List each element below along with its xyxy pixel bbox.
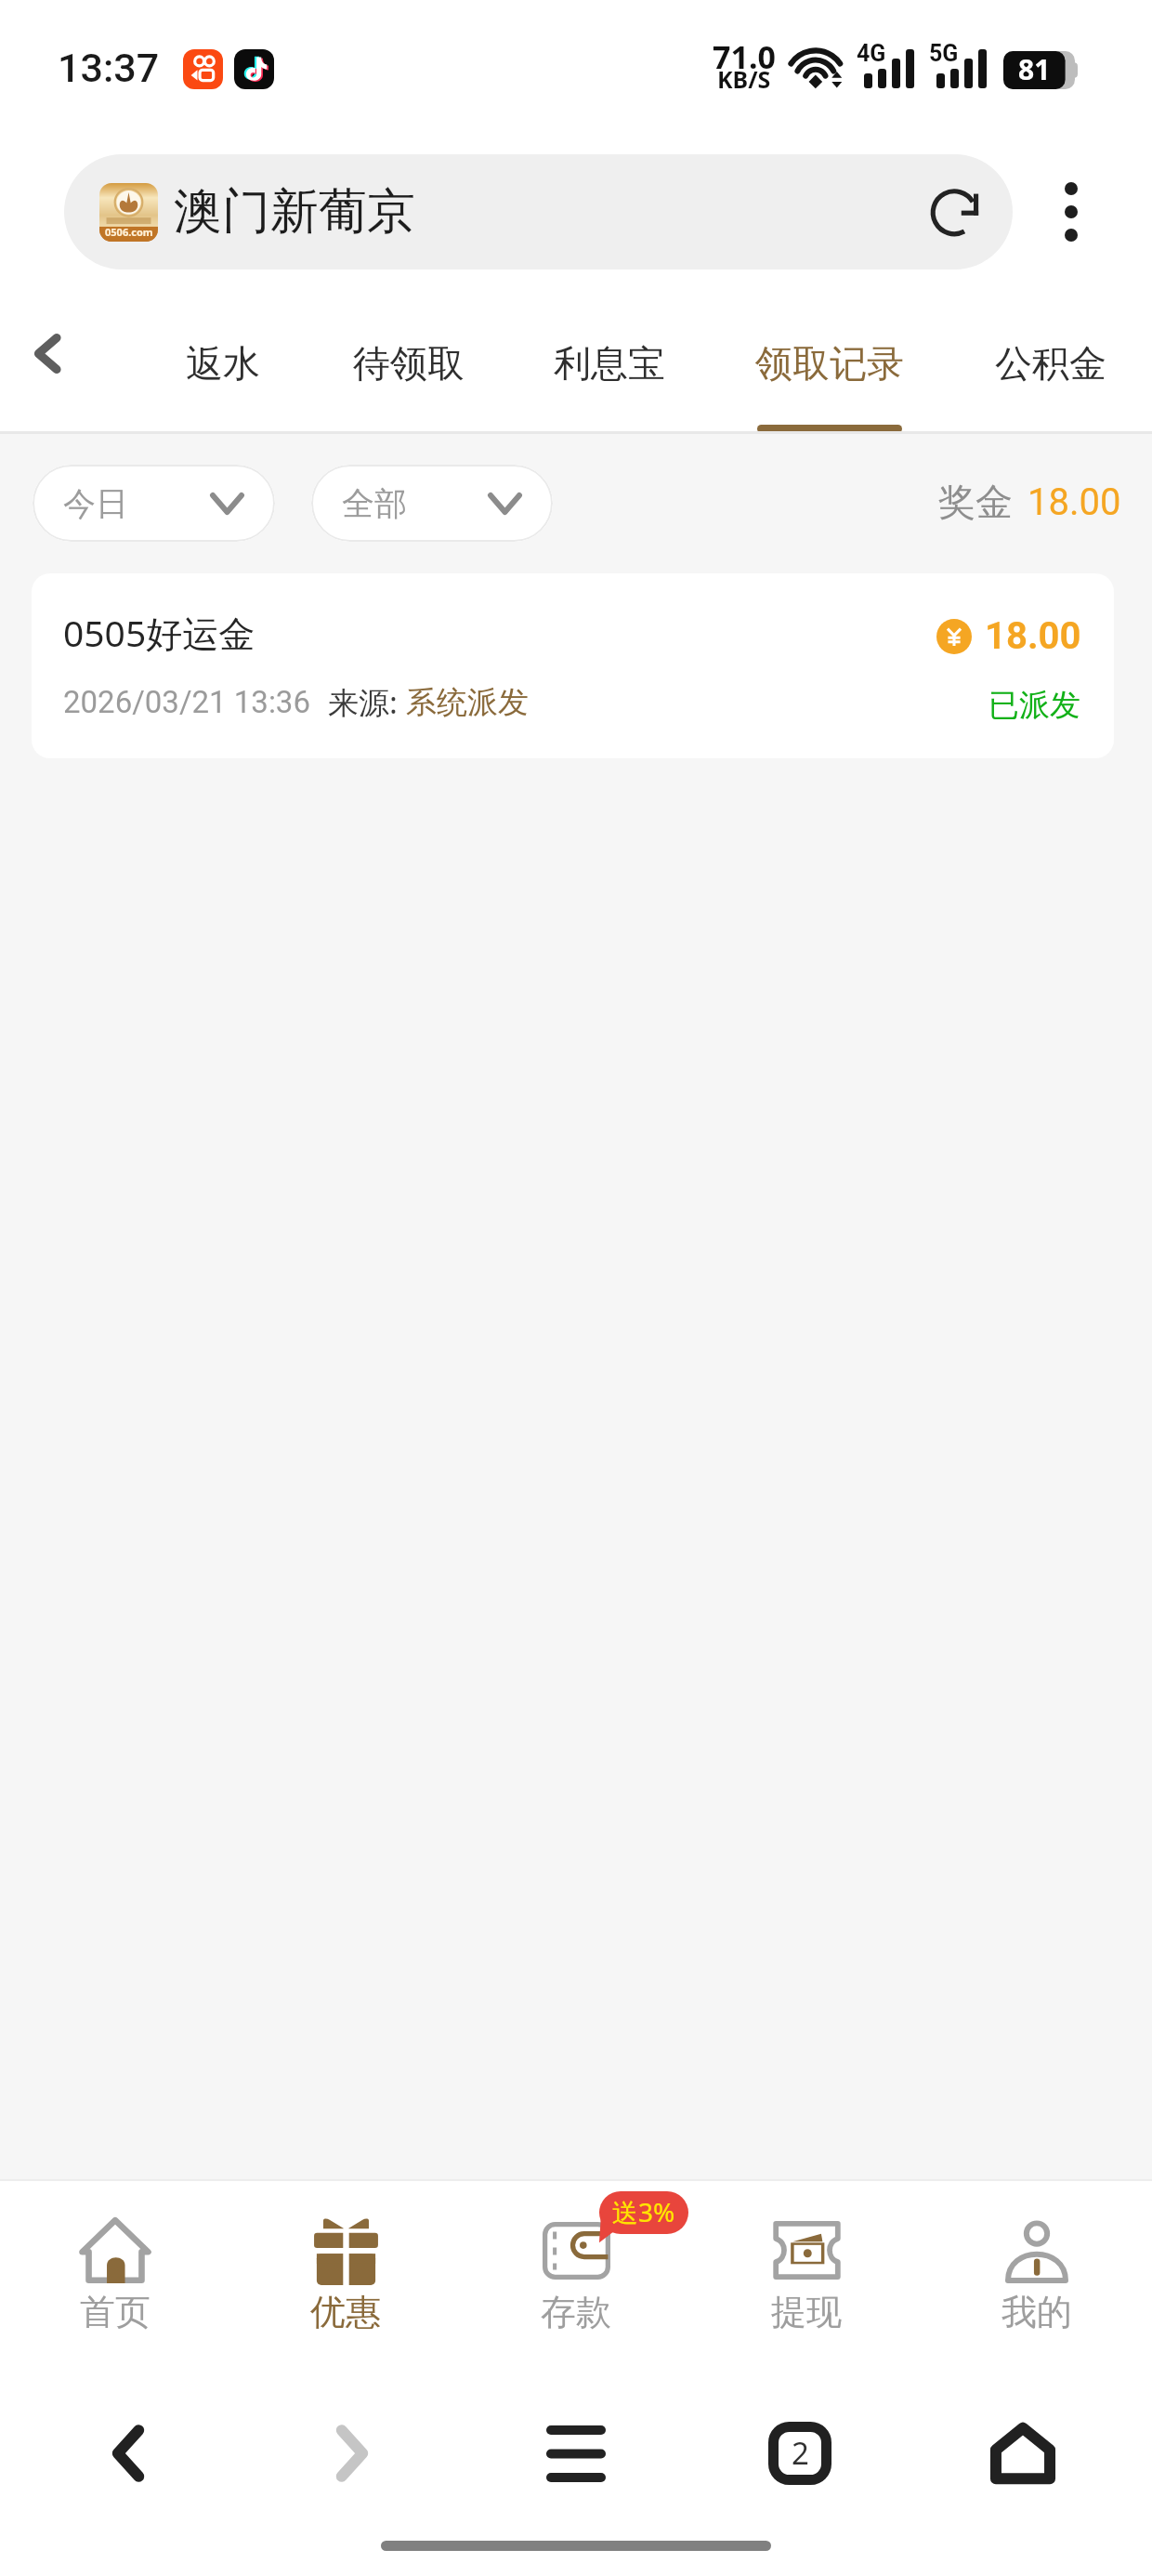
button[interactable]: Refresh	[910, 154, 1013, 269]
button[interactable]: 今日	[33, 465, 275, 542]
button[interactable]: 提现	[691, 2179, 922, 2372]
staticText: 0505好运金	[63, 608, 255, 657]
staticText: 71.0	[713, 35, 776, 78]
staticText: 提现	[771, 2290, 842, 2334]
button[interactable]: Home	[976, 2404, 1069, 2503]
button[interactable]: Back	[82, 2404, 175, 2503]
button[interactable]: 首页	[0, 2179, 230, 2372]
button[interactable]: 待领取	[325, 300, 492, 426]
staticText: 来源:	[328, 681, 406, 723]
staticText: 系统派发	[406, 683, 529, 722]
button[interactable]: More options	[1028, 154, 1114, 269]
staticText: 待领取	[353, 340, 465, 387]
staticText: KB/S	[717, 63, 771, 95]
staticText: 4G	[857, 40, 886, 67]
staticText: 奖金	[938, 479, 1013, 525]
button[interactable]: 0505好运金	[32, 573, 1114, 758]
button[interactable]: 0506.com	[64, 154, 1013, 269]
staticText: 全部	[342, 483, 407, 524]
staticText: 18.00	[1028, 480, 1121, 524]
staticText: 领取记录	[755, 340, 904, 387]
staticText: 优惠	[310, 2290, 381, 2334]
button[interactable]: 优惠	[230, 2179, 461, 2372]
button[interactable]: Forward	[306, 2404, 399, 2503]
button[interactable]: Tabs	[753, 2404, 846, 2503]
button[interactable]: Back	[10, 307, 85, 400]
staticText: 已派发	[988, 686, 1080, 725]
staticText: 5G	[929, 40, 959, 67]
staticText: 18.00	[985, 614, 1081, 658]
staticText: 2026/03/21 13:36	[63, 684, 310, 720]
staticText: 2	[792, 2432, 809, 2474]
staticText: 首页	[80, 2290, 151, 2334]
staticText: 我的	[1001, 2290, 1072, 2334]
button[interactable]: 领取记录	[727, 300, 932, 426]
button[interactable]: 全部	[311, 465, 553, 542]
button[interactable]: 我的	[922, 2179, 1152, 2372]
button[interactable]: Menu	[530, 2404, 622, 2503]
staticText: 送3%	[612, 2194, 675, 2229]
button[interactable]: 存款	[461, 2179, 691, 2372]
staticText: 公积金	[995, 340, 1106, 387]
staticText: 81	[1018, 50, 1051, 88]
staticText: 利息宝	[554, 340, 665, 387]
staticText: 澳门新葡京	[174, 181, 415, 243]
button[interactable]: 返水	[158, 300, 288, 426]
button[interactable]: 公积金	[967, 300, 1134, 426]
staticText: 返水	[186, 340, 260, 387]
button[interactable]: 利息宝	[526, 300, 693, 426]
staticText: 13:37	[58, 45, 160, 91]
staticText: 存款	[541, 2290, 611, 2334]
staticText: 今日	[63, 483, 128, 524]
staticText: 0506.com	[105, 225, 153, 239]
